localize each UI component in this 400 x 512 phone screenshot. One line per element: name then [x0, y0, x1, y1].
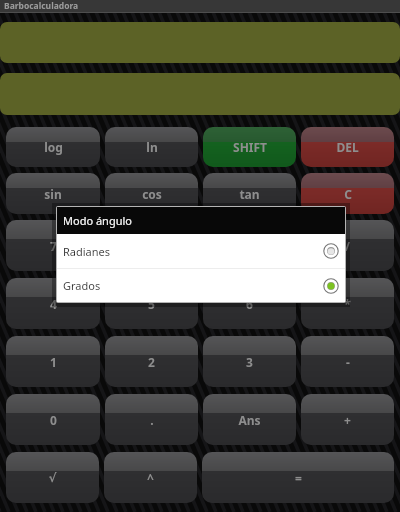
- staticText: 2: [148, 354, 155, 370]
- staticText: 4: [50, 296, 57, 312]
- button[interactable]: ^: [104, 452, 197, 503]
- staticText: DEL: [336, 139, 359, 155]
- staticText: 1: [50, 354, 57, 370]
- button[interactable]: tan: [203, 173, 296, 214]
- staticText: Radianes: [63, 244, 323, 259]
- button[interactable]: =: [202, 452, 394, 503]
- button[interactable]: √: [6, 452, 99, 503]
- staticText: log: [44, 139, 63, 155]
- button[interactable]: C: [301, 173, 394, 214]
- staticText: cos: [142, 186, 162, 202]
- button[interactable]: SHIFT: [203, 127, 296, 167]
- staticText: +: [344, 412, 351, 428]
- button[interactable]: sin: [6, 173, 100, 214]
- staticText: ^: [147, 470, 154, 486]
- button[interactable]: cos: [105, 173, 198, 214]
- button[interactable]: 8: [105, 220, 198, 271]
- button[interactable]: DEL: [301, 127, 394, 167]
- button[interactable]: 0: [6, 394, 100, 445]
- staticText: /: [345, 238, 350, 254]
- staticText: -: [346, 354, 350, 370]
- button[interactable]: ln: [105, 127, 198, 167]
- button[interactable]: 4: [6, 278, 100, 329]
- staticText: 6: [246, 296, 253, 312]
- button[interactable]: 7: [6, 220, 100, 271]
- button[interactable]: 6: [203, 278, 296, 329]
- staticText: Barbocalculadora: [4, 0, 79, 12]
- button[interactable]: -: [301, 336, 394, 387]
- staticText: Modo ángulo: [63, 213, 132, 228]
- staticText: *: [344, 296, 351, 312]
- staticText: tan: [239, 186, 260, 202]
- button[interactable]: 2: [105, 336, 198, 387]
- button[interactable]: +: [301, 394, 394, 445]
- staticText: sin: [44, 186, 62, 202]
- button[interactable]: Radianes: [57, 234, 345, 268]
- staticText: =: [295, 470, 302, 486]
- staticText: 3: [246, 354, 253, 370]
- staticText: 0: [50, 412, 57, 428]
- staticText: .: [150, 412, 154, 428]
- staticText: Ans: [238, 412, 261, 428]
- button[interactable]: 1: [6, 336, 100, 387]
- button[interactable]: log: [6, 127, 100, 167]
- staticText: C: [344, 186, 352, 202]
- button[interactable]: 9: [203, 220, 296, 271]
- button[interactable]: /: [301, 220, 394, 271]
- staticText: √: [48, 471, 57, 485]
- button[interactable]: 3: [203, 336, 296, 387]
- button[interactable]: *: [301, 278, 394, 329]
- staticText: 7: [50, 238, 57, 254]
- staticText: 5: [148, 296, 155, 312]
- staticText: SHIFT: [233, 139, 267, 155]
- staticText: ln: [146, 139, 158, 155]
- button[interactable]: Ans: [203, 394, 296, 445]
- button[interactable]: .: [105, 394, 198, 445]
- button[interactable]: 5: [105, 278, 198, 329]
- button[interactable]: Grados: [57, 269, 345, 302]
- staticText: Grados: [63, 278, 323, 293]
